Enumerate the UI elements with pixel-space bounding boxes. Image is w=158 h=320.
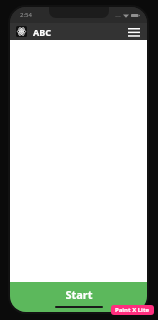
button[interactable]: App logo bbox=[16, 26, 27, 37]
button[interactable]: Menu bbox=[127, 25, 141, 39]
staticText: Start bbox=[65, 287, 93, 302]
staticText: 2:54 bbox=[20, 11, 32, 19]
button[interactable]: Start bbox=[10, 282, 147, 312]
staticText: ABC bbox=[33, 26, 51, 38]
staticText: Paint X Lite bbox=[115, 306, 150, 314]
